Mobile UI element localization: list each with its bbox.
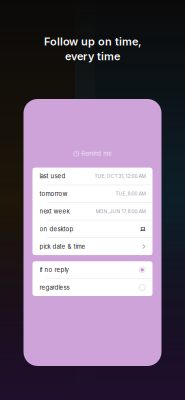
button[interactable]: if no reply (32, 261, 152, 278)
button[interactable]: next week (32, 203, 152, 220)
staticText: tomorrow (39, 190, 67, 197)
staticText: pick date & time (39, 243, 85, 250)
button[interactable]: on desktop (32, 220, 152, 237)
staticText: on desktop (39, 225, 73, 233)
button[interactable]: regardless (32, 279, 152, 296)
staticText: regardless (39, 284, 69, 291)
button[interactable]: tomorrow (32, 185, 152, 202)
staticText: TUE, OCT 31, 12:00 AM (94, 173, 145, 179)
staticText: every time (65, 50, 120, 63)
button[interactable]: last used (32, 168, 152, 185)
button[interactable]: pick date & time (32, 238, 152, 255)
staticText: next week (39, 208, 69, 215)
staticText: if no reply (39, 266, 68, 273)
staticText: Remind me (81, 150, 111, 157)
staticText: TUE, 8:00 AM (115, 191, 145, 197)
staticText: last used (39, 172, 65, 180)
staticText: MON, JUN 17, 8:00 AM (95, 208, 145, 214)
staticText: Follow up on time, (44, 35, 141, 48)
